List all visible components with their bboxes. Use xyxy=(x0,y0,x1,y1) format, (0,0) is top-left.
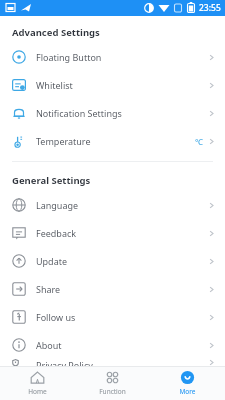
staticText: Update xyxy=(36,255,68,267)
staticText: Advanced Settings xyxy=(12,26,100,39)
button[interactable]: About xyxy=(0,331,225,359)
staticText: Floating Button xyxy=(36,51,102,63)
staticText: Follow us xyxy=(36,311,76,323)
button[interactable]: Share xyxy=(0,275,225,303)
staticText: Home xyxy=(28,387,47,396)
staticText: General Settings xyxy=(12,174,91,187)
staticText: ℃ xyxy=(195,136,203,147)
button[interactable]: More xyxy=(150,367,225,400)
staticText: About xyxy=(36,339,62,351)
button[interactable]: Follow us xyxy=(0,303,225,331)
staticText: 23:55 xyxy=(199,2,221,14)
staticText: Privacy Policy xyxy=(36,359,93,366)
button[interactable]: Update xyxy=(0,247,225,275)
button[interactable]: Notification Settings xyxy=(0,99,225,127)
staticText: Function xyxy=(99,387,126,396)
staticText: Notification Settings xyxy=(36,107,122,119)
button[interactable]: Floating Button xyxy=(0,43,225,71)
button[interactable]: Feedback xyxy=(0,219,225,247)
staticText: Language xyxy=(36,199,79,211)
button[interactable]: Whitelist xyxy=(0,71,225,99)
button[interactable]: Temperature xyxy=(0,127,225,155)
staticText: Share xyxy=(36,283,61,295)
button[interactable]: Language xyxy=(0,191,225,219)
staticText: Temperature xyxy=(36,135,91,147)
staticText: More xyxy=(179,387,196,396)
button[interactable]: Privacy Policy xyxy=(0,359,225,366)
staticText: Whitelist xyxy=(36,79,73,91)
staticText: Feedback xyxy=(36,227,77,239)
button[interactable]: Home xyxy=(0,367,75,400)
button[interactable]: Function xyxy=(75,367,150,400)
